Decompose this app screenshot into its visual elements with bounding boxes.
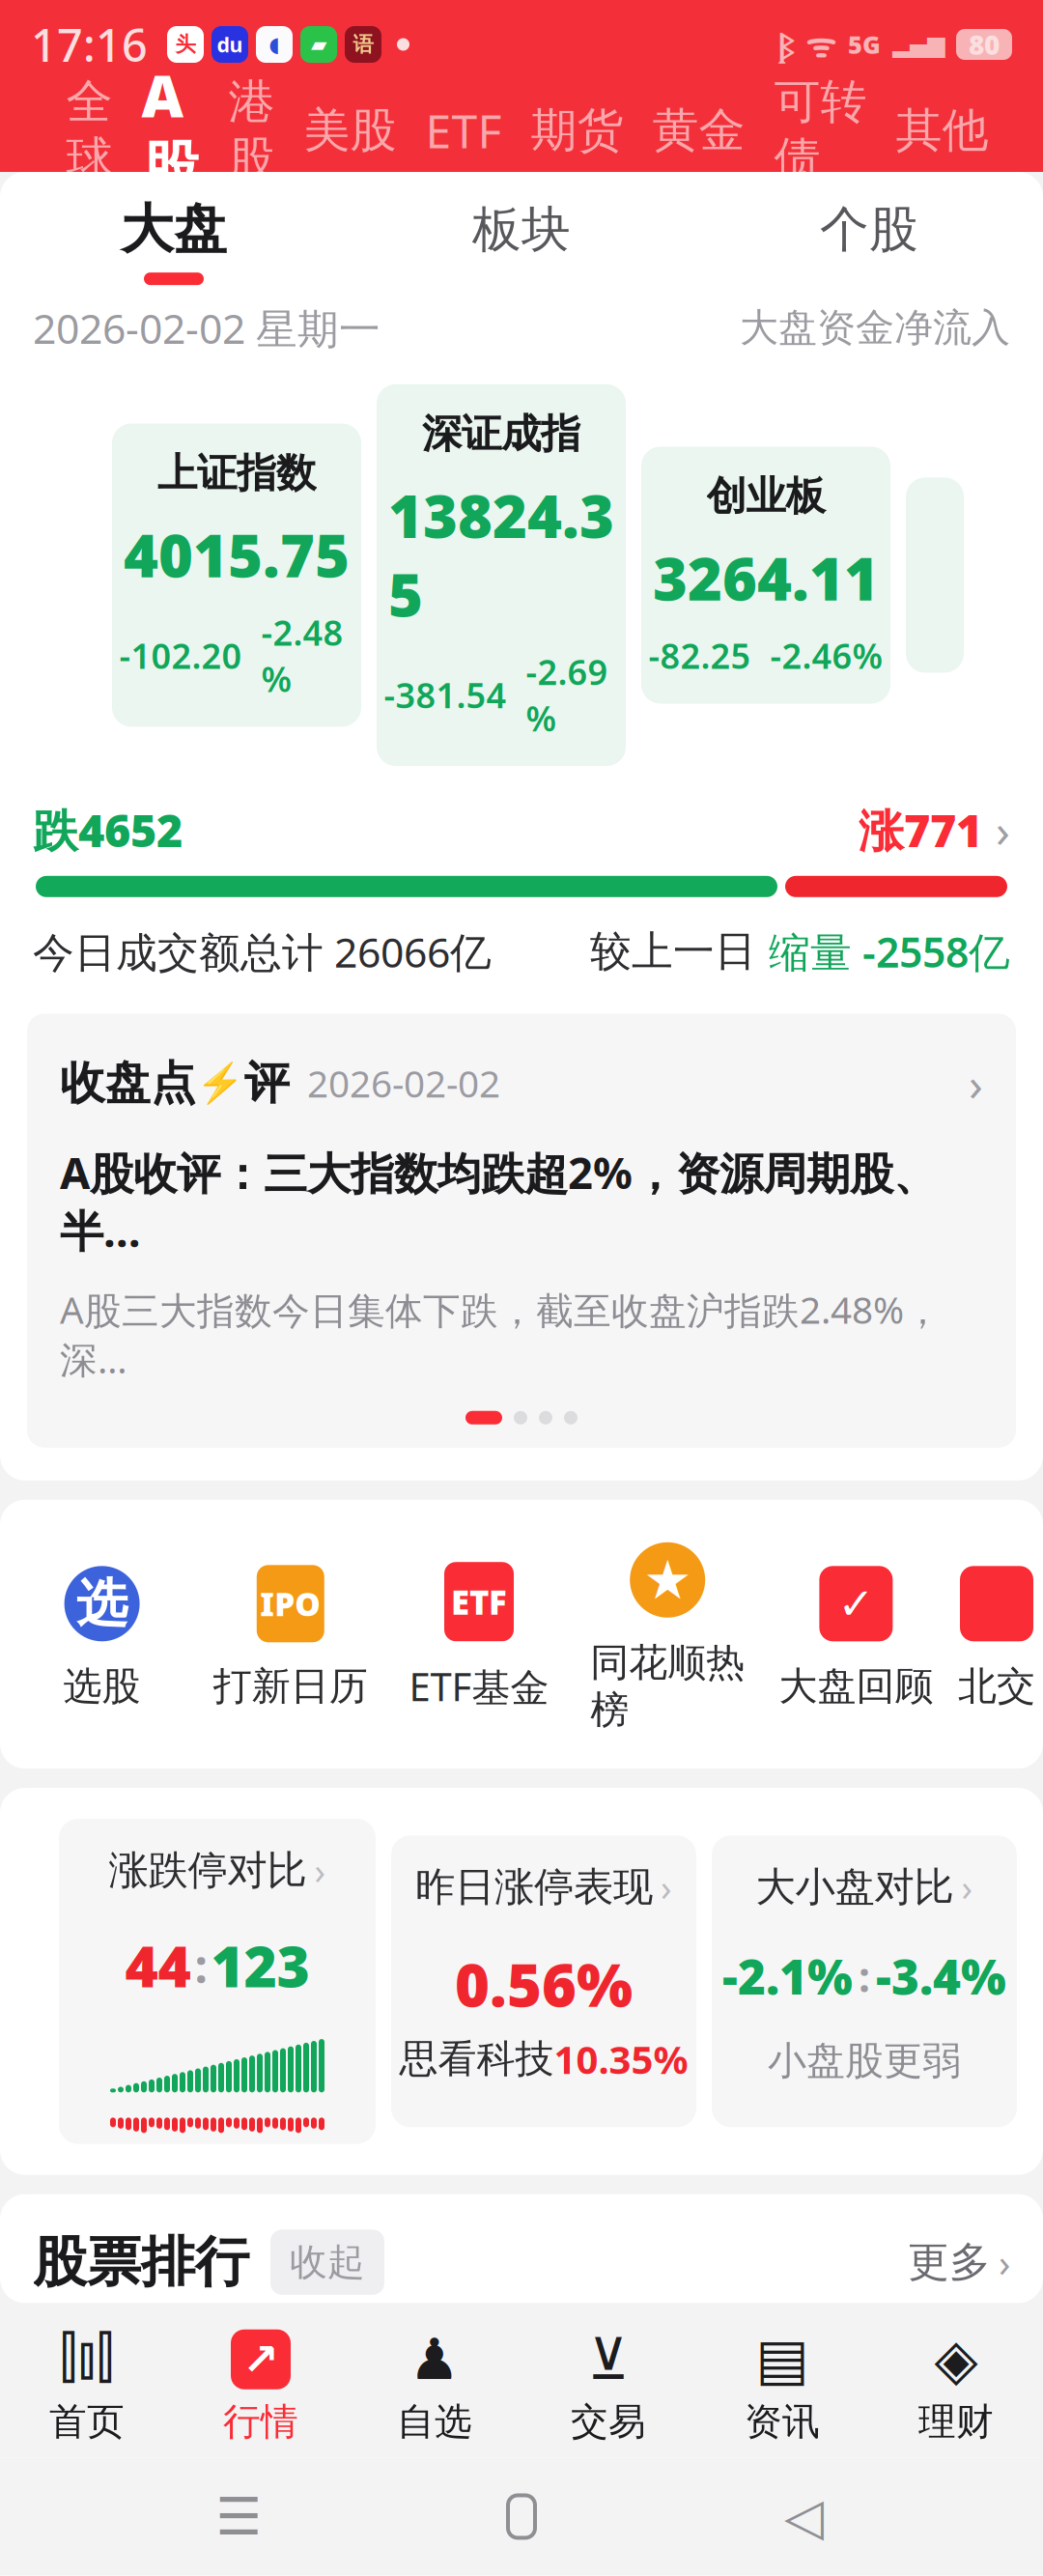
staticText: -2.69% xyxy=(526,649,608,741)
button[interactable]: 创业板 xyxy=(641,447,890,704)
button[interactable]: 更多 xyxy=(908,2236,1010,2288)
staticText: ✓ xyxy=(838,1579,874,1629)
button[interactable]: ETF xyxy=(385,1560,573,1712)
staticText: 语 xyxy=(353,32,373,57)
staticText: 自选 xyxy=(397,2399,472,2445)
staticText: 港股 xyxy=(228,73,275,187)
staticText: -2.1% xyxy=(722,1944,853,2008)
staticText: 5G xyxy=(848,28,881,61)
staticText: IPO xyxy=(260,1582,321,1625)
button[interactable]: 深证成指 xyxy=(377,384,626,766)
button[interactable]: 收起 xyxy=(270,2230,384,2295)
button[interactable]: 大盘 xyxy=(0,197,348,285)
button[interactable]: ⫿⫾⫿ xyxy=(0,2329,174,2445)
button[interactable]: Home xyxy=(478,2473,565,2560)
staticText: 思看科技 xyxy=(399,2035,554,2083)
button[interactable]: 北交 xyxy=(950,1562,1043,1710)
button[interactable]: ETF xyxy=(411,100,516,161)
staticText: ☰ xyxy=(216,2487,262,2546)
staticText: 大小盘对比 xyxy=(756,1863,954,1912)
button[interactable]: ◈ xyxy=(869,2329,1043,2445)
staticText: ▤ xyxy=(756,2327,809,2392)
staticText: 交易 xyxy=(571,2399,646,2445)
staticText: ▰ xyxy=(311,33,326,56)
button[interactable]: 全球 xyxy=(52,73,127,187)
staticText: 个股 xyxy=(820,199,918,260)
button[interactable]: 黄金 xyxy=(638,102,760,159)
staticText: 13824.35 xyxy=(388,476,614,633)
button[interactable]: 板块 xyxy=(348,199,695,283)
staticText: › xyxy=(996,799,1010,860)
button[interactable]: 收盘点 xyxy=(27,1014,1016,1411)
staticText: 板块 xyxy=(472,199,571,260)
staticText: › xyxy=(961,1863,973,1911)
staticText: 头 xyxy=(175,32,196,57)
staticText: 选股 xyxy=(63,1663,141,1710)
button[interactable]: 个股 xyxy=(695,199,1043,283)
staticText: ETF xyxy=(451,1579,507,1624)
button[interactable]: ★ xyxy=(573,1538,762,1734)
staticText: 上证指数 xyxy=(157,449,316,498)
staticText: 选 xyxy=(76,1572,128,1635)
staticText: 创业板 xyxy=(706,472,825,521)
staticText: › xyxy=(999,2236,1010,2288)
button[interactable]: ♟ xyxy=(348,2329,521,2445)
button[interactable]: Recents xyxy=(196,2473,282,2560)
staticText: 大盘回顾 xyxy=(779,1663,933,1710)
staticText: du xyxy=(217,31,243,58)
staticText: 17:16 xyxy=(31,14,148,74)
button[interactable]: ⊻ xyxy=(521,2329,695,2445)
staticText: ᯤ xyxy=(805,22,836,67)
button[interactable]: ▤ xyxy=(695,2329,869,2445)
staticText: ★ xyxy=(643,1549,692,1611)
staticText: 大盘资金净流入 xyxy=(740,304,1010,352)
staticText: ◈ xyxy=(934,2327,978,2392)
button[interactable]: IPO xyxy=(196,1562,385,1710)
button[interactable]: 昨日涨停表现 xyxy=(391,1836,696,2127)
staticText: 首页 xyxy=(49,2399,125,2445)
staticText: 深证成指 xyxy=(422,409,580,458)
staticText: 10.35% xyxy=(554,2033,688,2085)
staticText: 0.56% xyxy=(455,1944,633,2023)
button[interactable]: 上证指数 xyxy=(112,424,361,727)
button[interactable]: 大小盘对比 xyxy=(712,1836,1017,2127)
staticText: 收盘点 xyxy=(60,1055,196,1111)
staticText: -3.4% xyxy=(876,1944,1006,2008)
staticText: ♟ xyxy=(409,2327,460,2392)
staticText: 全球 xyxy=(66,73,113,187)
staticText: 打新日历 xyxy=(213,1663,368,1710)
button[interactable]: 其他 xyxy=(881,102,1003,159)
staticText: 2026-02-02 星期一 xyxy=(33,300,381,355)
staticText: 小盘股更弱 xyxy=(768,2037,961,2085)
staticText: 更多 xyxy=(908,2237,991,2287)
staticText: 4015.75 xyxy=(124,515,350,594)
staticText: ETF xyxy=(425,100,502,161)
staticText: 昨日涨停表现 xyxy=(415,1863,653,1912)
button[interactable]: ↗ xyxy=(174,2329,348,2445)
button[interactable]: 港股 xyxy=(214,73,289,187)
staticText: 期货 xyxy=(531,102,623,159)
button[interactable]: 选 xyxy=(8,1562,196,1710)
staticText: -2.46% xyxy=(770,632,883,679)
staticText: -381.54 xyxy=(384,672,507,718)
button[interactable]: Back xyxy=(761,2473,847,2560)
button[interactable]: 期货 xyxy=(516,102,638,159)
button[interactable]: ✓ xyxy=(762,1562,950,1710)
button[interactable]: 可转债 xyxy=(760,73,881,187)
staticText: 缩量 -2558亿 xyxy=(769,924,1010,979)
staticText: 黄金 xyxy=(652,102,745,159)
staticText: 收起 xyxy=(290,2239,365,2285)
staticText: ◖ xyxy=(269,33,280,56)
button[interactable]: 美股 xyxy=(289,102,411,159)
staticText: 123 xyxy=(211,1928,310,2003)
staticText: 行情 xyxy=(223,2399,298,2445)
staticText: ▂▄▆ xyxy=(892,31,944,58)
staticText: 44 xyxy=(125,1928,191,2003)
staticText: 其他 xyxy=(896,102,988,159)
button[interactable]: 跌4652 xyxy=(0,799,1043,860)
button[interactable]: 涨跌停对比 xyxy=(59,1819,376,2144)
staticText: 涨跌停对比 xyxy=(109,1846,307,1895)
button[interactable]: A股 xyxy=(127,56,214,204)
staticText: 评 xyxy=(244,1055,290,1111)
staticText: 大盘 xyxy=(121,197,227,262)
